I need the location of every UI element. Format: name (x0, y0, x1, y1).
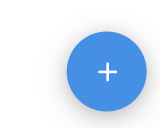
button[interactable]: Add (67, 31, 147, 111)
